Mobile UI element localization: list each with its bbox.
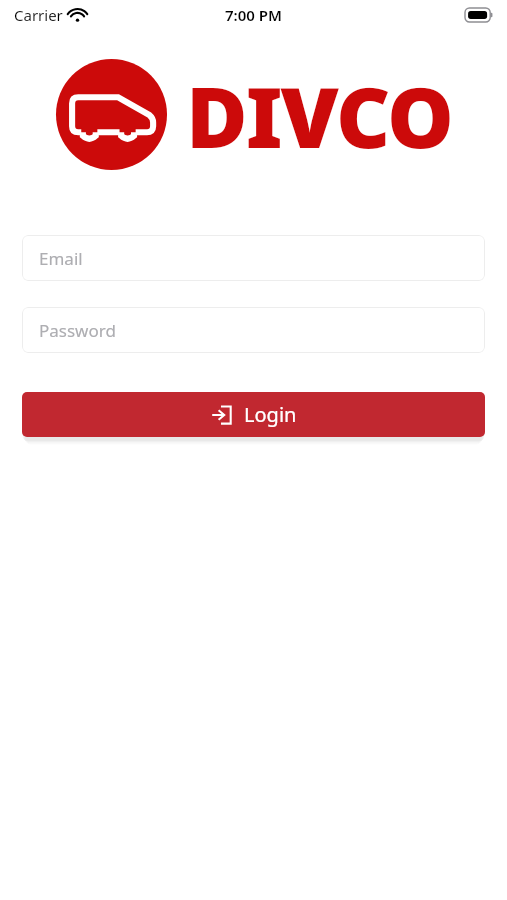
button[interactable]: Login	[22, 392, 485, 437]
staticText: Email	[39, 247, 83, 270]
staticText: Login	[244, 401, 297, 428]
staticText: Password	[39, 319, 116, 342]
staticText: Carrier	[14, 5, 63, 25]
staticText: DIVCO	[186, 58, 452, 172]
button[interactable]: Password	[22, 307, 485, 353]
other: Login	[211, 404, 233, 426]
staticText: 7:00 PM	[225, 5, 282, 25]
button[interactable]: Email	[22, 235, 485, 281]
